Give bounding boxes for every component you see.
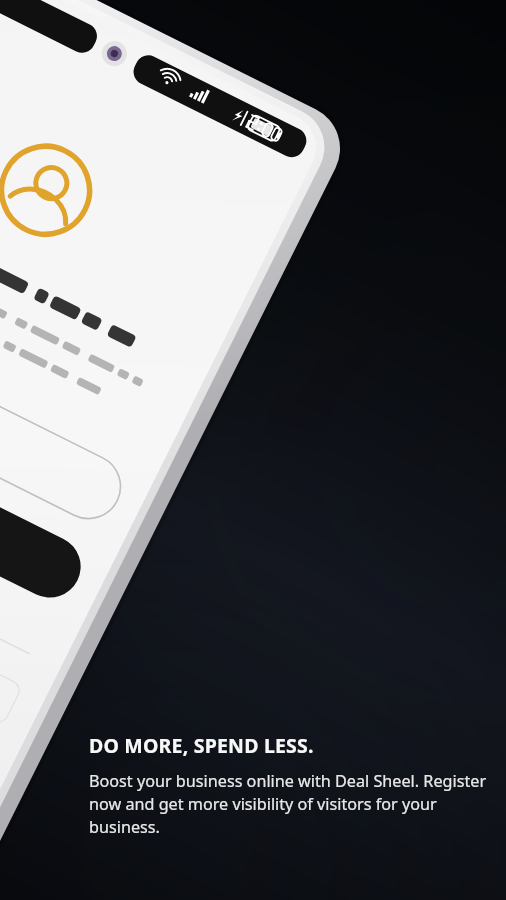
button[interactable]: Deal Sheel login screen preview xyxy=(0,0,506,900)
staticText: DO MORE, SPEND LESS. xyxy=(89,732,314,759)
staticText: Boost your business online with Deal She… xyxy=(89,770,494,838)
